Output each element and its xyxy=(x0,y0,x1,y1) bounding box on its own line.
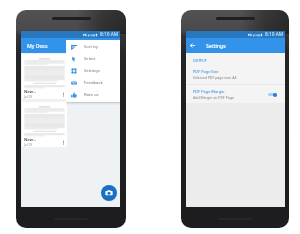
staticText: OUTPUT xyxy=(193,58,207,63)
button[interactable]: Rate us xyxy=(66,89,120,101)
button[interactable]: Sort by xyxy=(66,41,120,53)
staticText: Settings xyxy=(84,68,100,74)
button[interactable]: Scan new document xyxy=(101,185,117,201)
staticText: Rate us xyxy=(84,92,99,98)
staticText: PDF Page Margin xyxy=(193,89,225,94)
staticText: Select xyxy=(84,56,96,62)
button[interactable]: PDF Page Margin xyxy=(186,89,285,100)
staticText: Add Margin on PDF Page xyxy=(193,95,234,100)
staticText: 8:10 AM xyxy=(265,31,284,38)
staticText: Feedback xyxy=(84,80,103,86)
button[interactable]: Feedback xyxy=(66,77,120,89)
button[interactable]: More options xyxy=(61,90,66,99)
staticText: PDF Page Size xyxy=(193,69,219,74)
button[interactable]: New... xyxy=(22,102,67,147)
button[interactable]: New... xyxy=(22,54,67,99)
staticText: Jul 29 xyxy=(75,95,84,99)
staticText: Settings xyxy=(206,42,226,49)
staticText: New... xyxy=(24,89,37,94)
staticText: New... xyxy=(75,89,88,94)
button[interactable]: Select xyxy=(66,53,120,65)
button[interactable]: Settings xyxy=(66,65,120,77)
staticText: New... xyxy=(24,137,37,142)
button[interactable]: More options xyxy=(61,138,66,147)
button[interactable]: PDF Page Size xyxy=(186,69,285,80)
staticText: My Docs xyxy=(27,42,48,49)
staticText: 8:10 AM xyxy=(100,31,119,38)
staticText: Sort by xyxy=(84,44,98,50)
staticText: Jul 29 xyxy=(24,95,33,99)
staticText: Selected PDF page size: A4 xyxy=(193,75,237,80)
button[interactable]: Back xyxy=(190,43,195,48)
button[interactable]: New... xyxy=(73,54,119,99)
staticText: Jul 29 xyxy=(24,143,33,147)
